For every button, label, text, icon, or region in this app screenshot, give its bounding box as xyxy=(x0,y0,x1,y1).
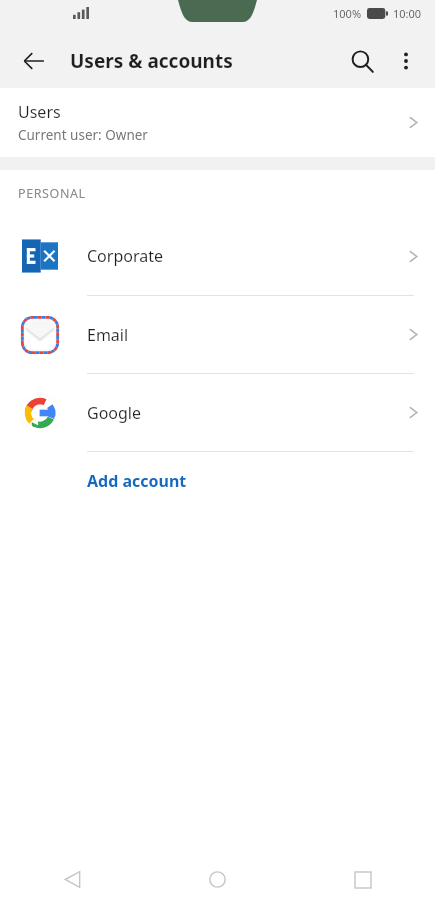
button[interactable]: Add account xyxy=(0,452,435,509)
staticText: Email xyxy=(87,324,408,346)
staticText: Google xyxy=(87,402,408,424)
staticText: Add account xyxy=(87,470,187,492)
button[interactable]: Email xyxy=(0,296,435,373)
button[interactable]: Home xyxy=(145,855,290,904)
button[interactable]: Google xyxy=(0,374,435,451)
staticText: Corporate xyxy=(87,245,408,267)
staticText: 100% xyxy=(333,6,362,21)
button[interactable]: Users xyxy=(0,88,435,157)
staticText: Users xyxy=(18,101,61,123)
staticText: 10:00 xyxy=(393,6,422,21)
staticText: Users & accounts xyxy=(70,48,233,74)
button[interactable]: Corporate xyxy=(0,217,435,295)
button[interactable]: Back xyxy=(12,39,56,83)
staticText: PERSONAL xyxy=(18,185,86,202)
button[interactable]: More options xyxy=(385,40,427,82)
button[interactable]: Back xyxy=(0,855,145,904)
button[interactable]: Search xyxy=(339,38,385,84)
staticText: Current user: Owner xyxy=(18,126,148,144)
button[interactable]: Recents xyxy=(290,855,435,904)
